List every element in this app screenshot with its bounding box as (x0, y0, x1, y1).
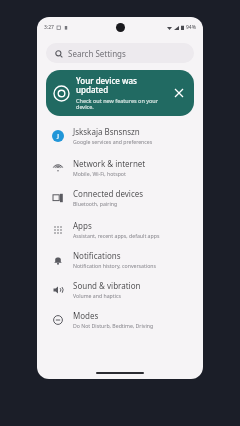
button[interactable]: Connected devices (37, 186, 203, 209)
button[interactable]: Your device was updated (46, 70, 194, 116)
staticText: Sound & vibration (73, 280, 141, 291)
staticText: Modes (73, 310, 99, 321)
staticText: Check out new features on your device. (76, 97, 159, 111)
staticText: 94% (186, 24, 196, 31)
staticText: Apps (73, 220, 92, 231)
staticText: J (57, 132, 59, 140)
staticText: Network & internet (73, 158, 146, 169)
staticText: Assistant, recent apps, default apps (73, 232, 160, 239)
staticText: 3:27 (44, 24, 54, 31)
staticText: Bluetooth, pairing (73, 200, 118, 207)
button[interactable]: Modes (37, 308, 203, 331)
staticText: Google services and preferences (73, 138, 153, 145)
staticText: Search Settings (68, 48, 126, 59)
button[interactable]: J (37, 124, 203, 147)
button[interactable]: Search Settings (46, 43, 194, 63)
staticText: Do Not Disturb, Bedtime, Driving (73, 322, 154, 329)
button[interactable]: Notifications (37, 248, 203, 271)
staticText: Notification history, conversations (73, 262, 157, 269)
staticText: Notifications (73, 250, 121, 261)
button[interactable]: Sound & vibration (37, 278, 203, 301)
staticText: Connected devices (73, 188, 144, 199)
button[interactable]: Dismiss (172, 86, 186, 100)
staticText: Jskskaja Bsnsnszn (73, 126, 140, 137)
staticText: Volume and haptics (73, 292, 121, 299)
staticText: Your device was updated (76, 75, 137, 96)
button[interactable]: Network & internet (37, 156, 203, 179)
button[interactable]: Apps (37, 218, 203, 241)
staticText: Mobile, Wi-Fi, hotspot (73, 170, 126, 177)
